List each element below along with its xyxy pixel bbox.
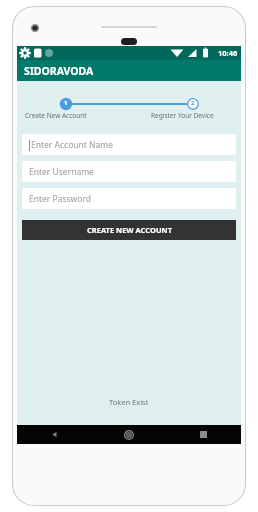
button[interactable]: Enter Username <box>22 161 236 182</box>
staticText: Enter Username <box>29 166 94 178</box>
button[interactable]: Recent apps <box>166 425 241 444</box>
staticText: 1 <box>64 99 68 107</box>
button[interactable]: Enter Account Name <box>22 134 236 155</box>
staticText: SIDORAVODA <box>24 64 94 78</box>
staticText: CREATE NEW ACCOUNT <box>87 225 172 235</box>
button[interactable]: Home <box>91 425 166 444</box>
staticText: Register Your Device <box>151 111 214 120</box>
staticText: Create New Account <box>25 111 87 120</box>
staticText: 10:46 <box>218 48 238 58</box>
staticText: Enter Password <box>29 193 92 205</box>
staticText: Token Exist <box>109 397 149 407</box>
button[interactable]: CREATE NEW ACCOUNT <box>22 220 236 240</box>
button[interactable]: Back <box>17 425 91 444</box>
button[interactable]: Token Exist <box>17 397 241 407</box>
staticText: 2 <box>191 99 195 107</box>
staticText: Enter Account Name <box>31 139 114 151</box>
button[interactable]: Enter Password <box>22 188 236 209</box>
